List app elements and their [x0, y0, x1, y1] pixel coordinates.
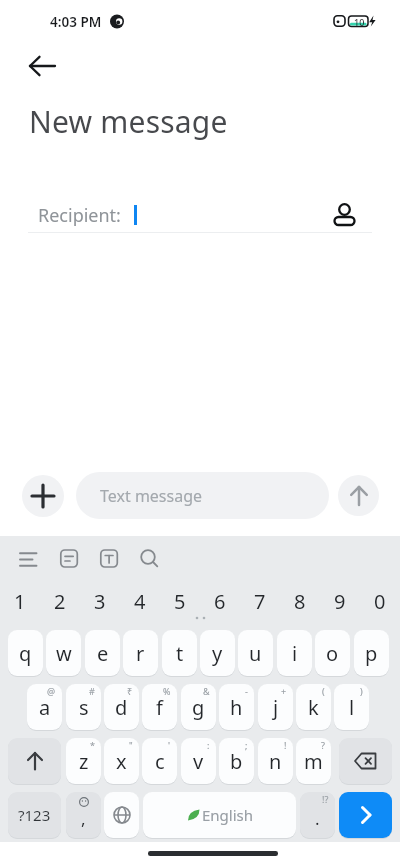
staticText: s [79, 694, 89, 721]
staticText: 8 [294, 588, 306, 615]
staticText: ₹ [127, 685, 133, 697]
staticText: j [273, 694, 279, 721]
button[interactable]: d [104, 684, 139, 730]
button[interactable]: t [162, 630, 197, 676]
staticText: c [155, 748, 165, 775]
button[interactable]: 0 [360, 586, 400, 616]
staticText: x [116, 748, 127, 775]
button[interactable]: Text message [76, 472, 329, 519]
button[interactable]: u [238, 630, 273, 676]
staticText: English [202, 805, 254, 825]
staticText: y [212, 640, 223, 667]
staticText: v [193, 748, 204, 775]
button[interactable]: , [66, 792, 101, 838]
staticText: m [304, 748, 323, 775]
staticText: ; [245, 739, 248, 751]
staticText: 2 [54, 588, 66, 615]
staticText: ?123 [18, 805, 51, 825]
staticText: a [39, 694, 51, 721]
button[interactable]: 2 [40, 586, 80, 616]
button[interactable]: English [143, 792, 296, 838]
button[interactable]: c [142, 738, 177, 784]
staticText: ' [168, 739, 171, 751]
staticText: - [245, 685, 248, 697]
button[interactable]: s [66, 684, 101, 730]
staticText: n [269, 748, 282, 775]
button[interactable]: a [27, 684, 62, 730]
button[interactable] [100, 545, 120, 573]
button[interactable]: o [315, 630, 350, 676]
staticText: !? [322, 793, 329, 805]
button[interactable]: e [85, 630, 120, 676]
button[interactable]: x [104, 738, 139, 784]
staticText: ( [322, 685, 325, 697]
staticText: 9 [334, 588, 346, 615]
button[interactable]: i [277, 630, 312, 676]
staticText: b [230, 748, 243, 775]
button[interactable]: z [66, 738, 101, 784]
staticText: * [90, 739, 95, 751]
button[interactable] [338, 475, 379, 516]
button[interactable]: v [181, 738, 216, 784]
button[interactable]: n [258, 738, 293, 784]
staticText: , [81, 807, 86, 830]
button[interactable]: f [142, 684, 177, 730]
button[interactable]: 4 [120, 586, 160, 616]
staticText: " [129, 739, 133, 751]
staticText: r [136, 640, 145, 667]
button[interactable]: m [296, 738, 331, 784]
button[interactable]: k [296, 684, 331, 730]
button[interactable]: 1 [0, 586, 40, 616]
staticText: ! [284, 739, 287, 751]
button[interactable]: r [123, 630, 158, 676]
button[interactable]: Recipient: [28, 196, 328, 232]
staticText: & [203, 685, 210, 697]
button[interactable]: 6 [200, 586, 240, 616]
staticText: k [308, 694, 319, 721]
staticText: % [163, 685, 171, 697]
staticText: ) [360, 685, 363, 697]
button[interactable]: 8 [280, 586, 320, 616]
button[interactable] [104, 792, 139, 838]
staticText: 1 [14, 588, 26, 615]
staticText: f [156, 694, 163, 721]
button[interactable] [139, 545, 163, 573]
button[interactable]: y [200, 630, 235, 676]
button[interactable] [339, 792, 392, 838]
button[interactable] [60, 545, 80, 573]
staticText: + [281, 685, 287, 697]
button[interactable] [22, 475, 64, 517]
button[interactable] [330, 198, 360, 230]
button[interactable] [8, 738, 61, 784]
button[interactable]: 9 [320, 586, 360, 616]
button[interactable]: q [8, 630, 43, 676]
staticText: o [326, 640, 339, 667]
staticText: 7 [254, 588, 266, 615]
button[interactable] [20, 52, 64, 82]
button[interactable]: p [354, 630, 389, 676]
staticText: @ [47, 685, 56, 697]
staticText: e [97, 640, 109, 667]
staticText: . [315, 807, 320, 830]
staticText: 4 [134, 588, 146, 615]
staticText: z [79, 748, 89, 775]
button[interactable]: !? [300, 792, 335, 838]
button[interactable]: 7 [240, 586, 280, 616]
staticText: # [89, 685, 95, 697]
button[interactable]: 3 [80, 586, 120, 616]
button[interactable]: g [181, 684, 216, 730]
button[interactable]: h [219, 684, 254, 730]
button[interactable]: l [334, 684, 369, 730]
button[interactable]: b [219, 738, 254, 784]
staticText: i [292, 640, 298, 667]
staticText: : [207, 739, 210, 751]
button[interactable]: j [258, 684, 293, 730]
staticText: p [365, 640, 378, 667]
button[interactable]: w [46, 630, 81, 676]
staticText: New message [29, 101, 228, 142]
staticText: l [349, 694, 355, 721]
button[interactable] [339, 738, 392, 784]
button[interactable] [18, 545, 48, 573]
button[interactable]: 5 [160, 586, 200, 616]
button[interactable]: ?123 [8, 792, 61, 838]
